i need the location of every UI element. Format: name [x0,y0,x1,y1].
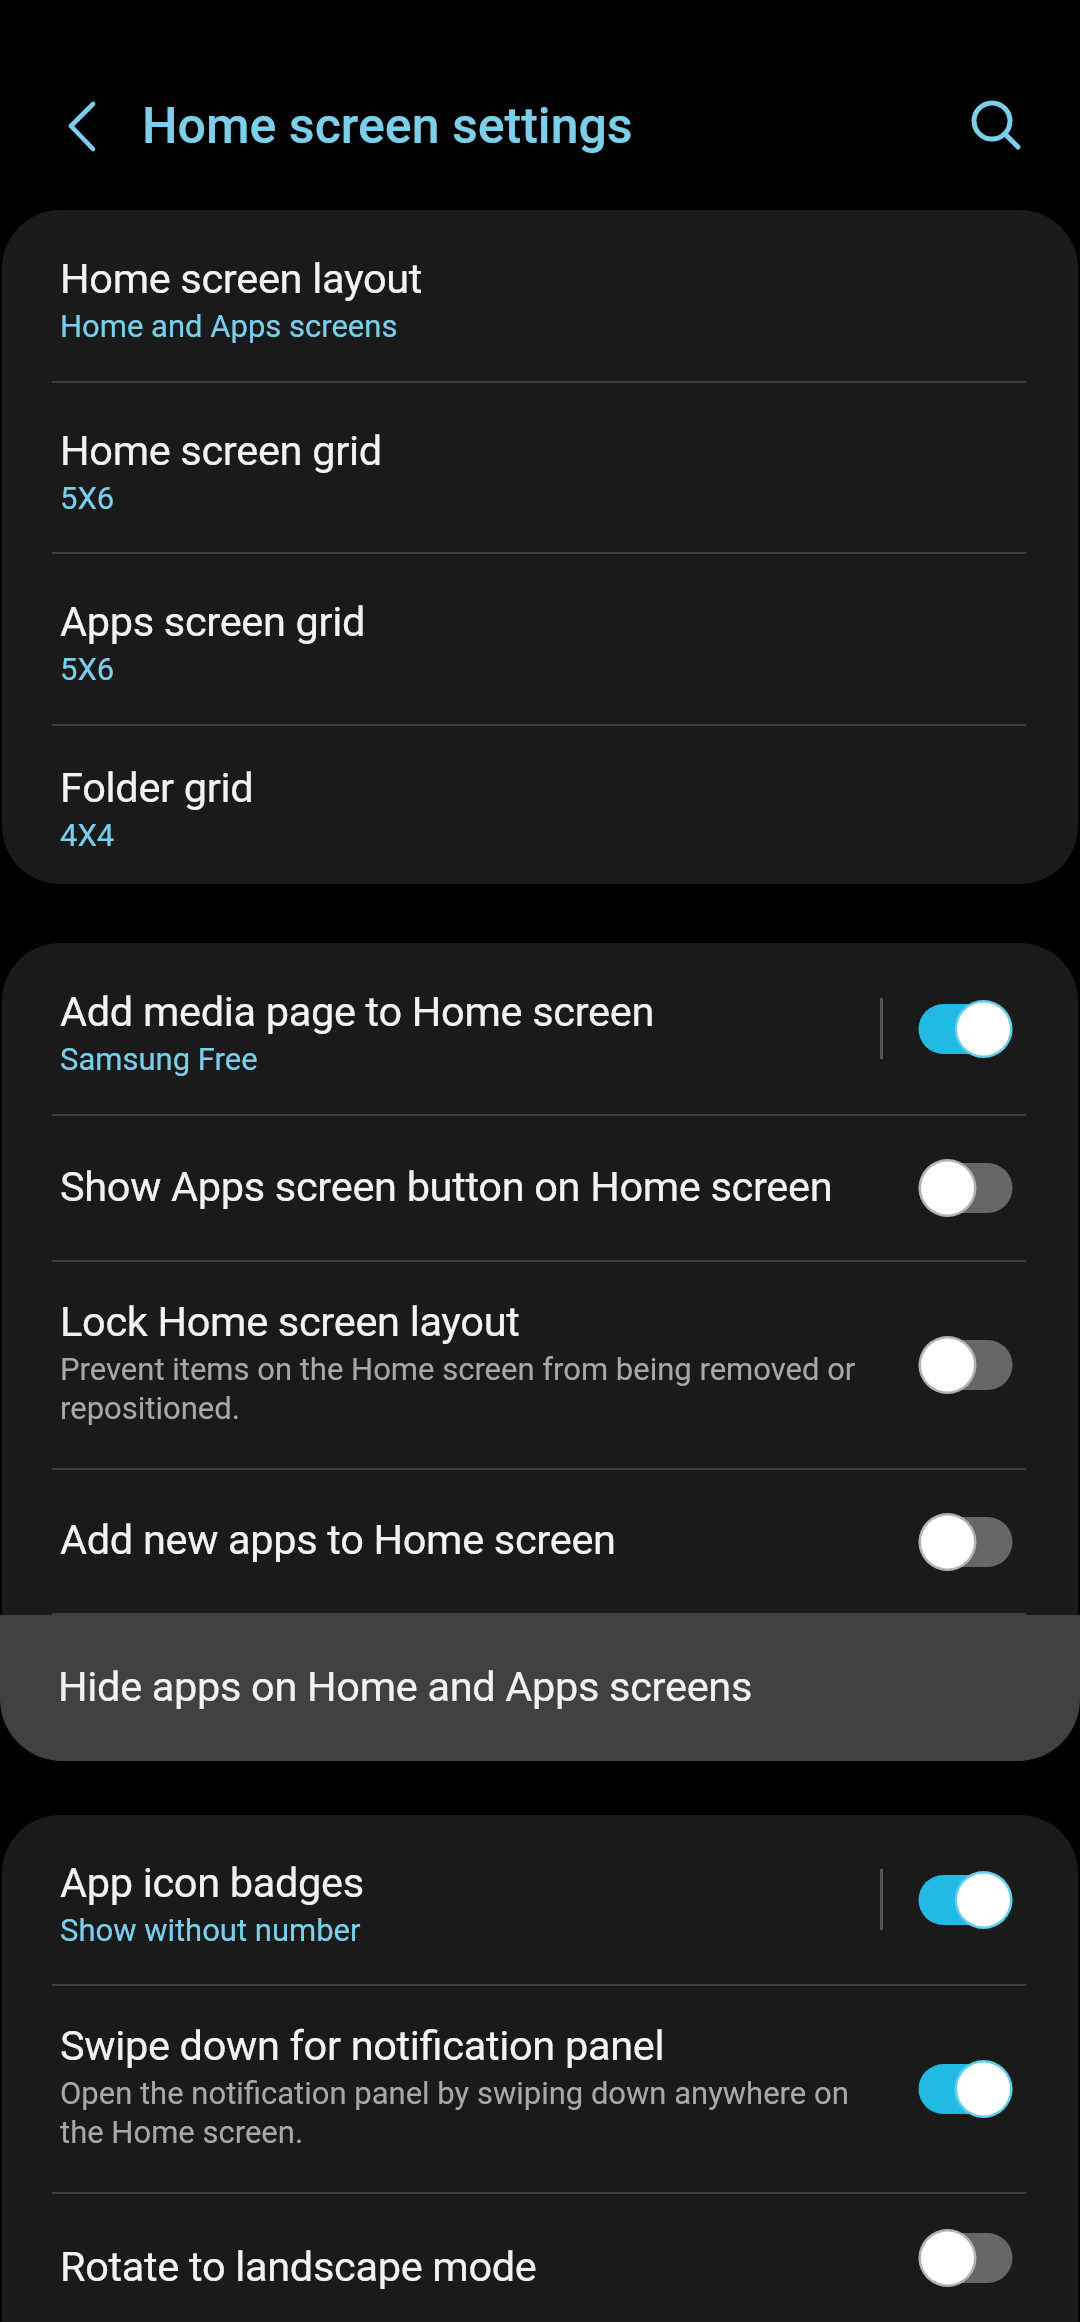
button[interactable]: Home screen layout [2,210,1078,381]
button[interactable]: Back [29,84,113,168]
button[interactable]: Lock Home screen layout [916,1334,1015,1396]
staticText: Prevent items on the Home screen from be… [60,1351,874,1426]
button[interactable]: App icon badges [916,1869,1015,1931]
staticText: App icon badges [60,1858,364,1907]
staticText: Show Apps screen button on Home screen [60,1162,833,1211]
staticText: Folder grid [60,763,254,812]
button[interactable]: Show Apps screen button on Home screen [2,1116,1078,1260]
staticText: Open the notification panel by swiping d… [60,2075,874,2150]
button[interactable]: Add new apps to Home screen [916,1511,1015,1573]
staticText: 5X6 [60,480,115,516]
button[interactable]: Rotate to landscape mode [916,2227,1015,2289]
button[interactable]: Add media page to Home screen [2,943,1078,1114]
button[interactable]: Hide apps on Home and Apps screens [0,1615,1080,1761]
button[interactable]: Lock Home screen layout [2,1262,1078,1468]
staticText: Apps screen grid [60,597,366,646]
button[interactable]: Search [950,79,1034,163]
staticText: Home screen settings [142,97,633,156]
button[interactable]: App icon badges [2,1815,1078,1984]
staticText: Samsung Free [60,1041,258,1077]
button[interactable]: Home screen grid [2,383,1078,552]
staticText: Add media page to Home screen [60,987,654,1036]
staticText: 4X4 [60,817,115,853]
staticText: Home screen grid [60,426,382,475]
button[interactable]: Rotate to landscape mode [2,2194,1078,2322]
staticText: Show without number [60,1912,361,1948]
staticText: 5X6 [60,651,115,687]
staticText: Hide apps on Home and Apps screens [58,1662,753,1711]
staticText: Rotate to landscape mode [60,2242,537,2291]
button[interactable]: Folder grid [2,726,1078,884]
staticText: Home screen layout [60,254,423,303]
staticText: Swipe down for notification panel [60,2021,665,2070]
button[interactable]: Swipe down for notification panel [916,2058,1015,2120]
button[interactable]: Add media page to Home screen [916,998,1015,1060]
button[interactable]: Show Apps screen button on Home screen [916,1157,1015,1219]
button[interactable]: Apps screen grid [2,554,1078,724]
staticText: Home and Apps screens [60,308,398,344]
button[interactable]: Add new apps to Home screen [2,1470,1078,1613]
staticText: Lock Home screen layout [60,1297,520,1346]
staticText: Add new apps to Home screen [60,1515,616,1564]
button[interactable]: Swipe down for notification panel [2,1986,1078,2192]
